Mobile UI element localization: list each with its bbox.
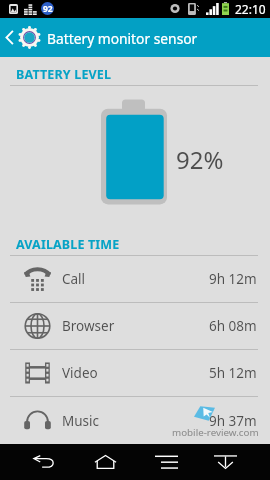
staticText: Browser bbox=[62, 317, 115, 335]
button[interactable]: Home bbox=[85, 444, 125, 480]
staticText: Music bbox=[62, 412, 100, 430]
staticText: 6h 08m bbox=[209, 317, 257, 335]
button[interactable]: Hide keyboard bbox=[205, 444, 245, 480]
staticText: BATTERY LEVEL bbox=[16, 66, 112, 83]
staticText: 92% bbox=[176, 143, 224, 176]
button[interactable]: Music bbox=[0, 397, 270, 444]
button[interactable]: Back bbox=[23, 444, 63, 480]
staticText: mobile-review.com bbox=[172, 426, 259, 439]
button[interactable]: Back bbox=[1, 18, 18, 57]
staticText: 9h 37m bbox=[209, 412, 257, 430]
button[interactable]: Video bbox=[0, 349, 270, 396]
button[interactable]: Browser bbox=[0, 302, 270, 349]
staticText: AVAILABLE TIME bbox=[16, 236, 120, 253]
button[interactable]: Settings bbox=[17, 18, 41, 57]
staticText: Video bbox=[62, 364, 98, 382]
staticText: Call bbox=[62, 270, 86, 288]
button[interactable]: Call bbox=[0, 255, 270, 302]
staticText: 5h 12m bbox=[209, 364, 257, 382]
button[interactable]: Recent apps bbox=[146, 444, 186, 480]
staticText: Battery monitor sensor bbox=[47, 29, 198, 48]
staticText: 92 bbox=[43, 3, 53, 15]
staticText: 22:10 bbox=[235, 1, 266, 17]
staticText: 9h 12m bbox=[209, 270, 257, 288]
